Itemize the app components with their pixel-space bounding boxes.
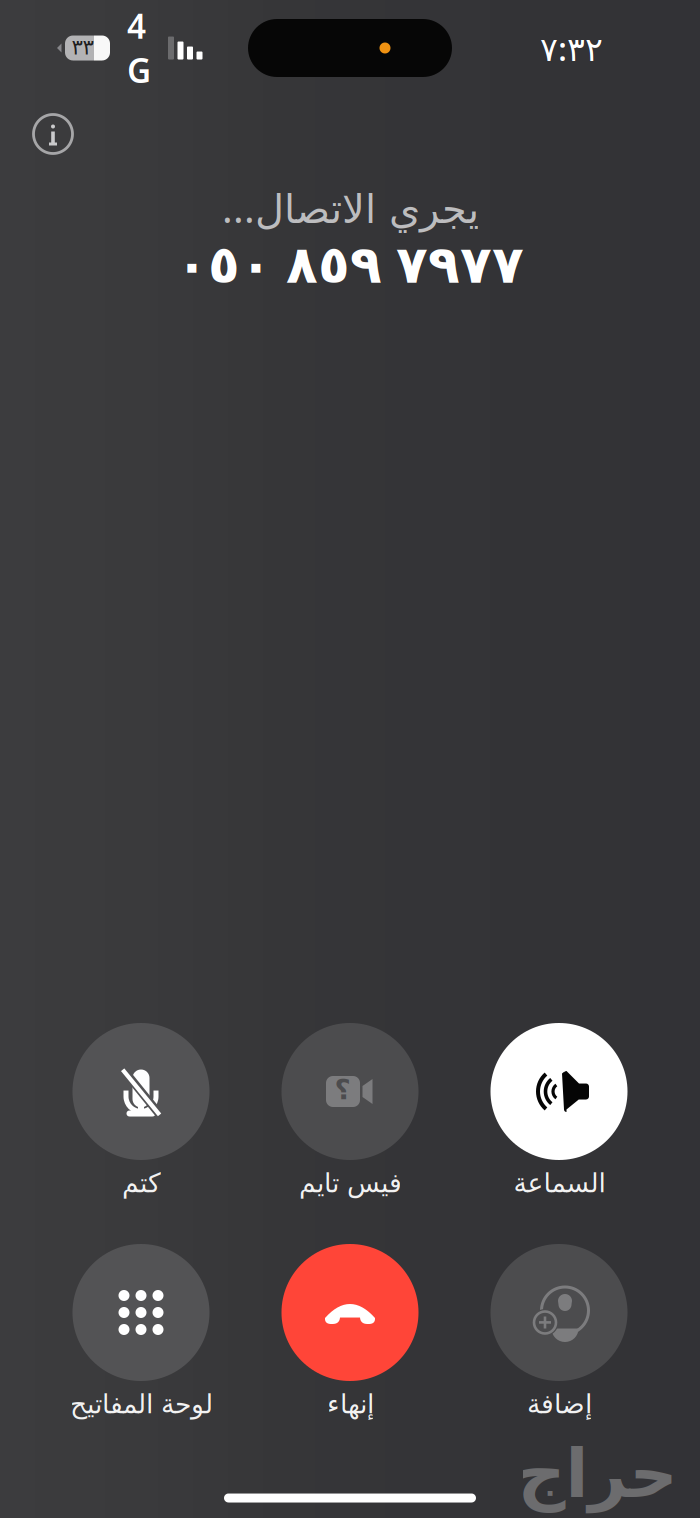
staticText: لوحة المفاتيح (69, 1389, 212, 1419)
button[interactable]: السماعة (454, 1023, 663, 1200)
staticText: السماعة (513, 1168, 605, 1198)
button[interactable]: إضافة (454, 1244, 663, 1421)
staticText: حراج (517, 1436, 677, 1512)
staticText: كتم (121, 1168, 160, 1198)
button[interactable]: لوحة المفاتيح (36, 1244, 245, 1421)
button[interactable]: إنهاء (245, 1244, 454, 1421)
staticText: إضافة (526, 1389, 591, 1419)
staticText: ٣٣ (71, 35, 93, 59)
staticText: يجري الاتصال... (221, 181, 478, 234)
button[interactable]: Call info (21, 102, 85, 166)
staticText: ؟ (334, 1074, 350, 1105)
staticText: 4G (127, 4, 151, 92)
staticText: فيس تايم (298, 1168, 401, 1198)
button[interactable]: كتم (36, 1023, 245, 1200)
staticText: ٧٩٧٧ ٨٥٩ ٠٥٠ (176, 228, 524, 297)
button[interactable]: ؟ (245, 1023, 454, 1200)
staticText: إنهاء (326, 1389, 373, 1419)
staticText: ٧:٣٢ (540, 26, 603, 70)
